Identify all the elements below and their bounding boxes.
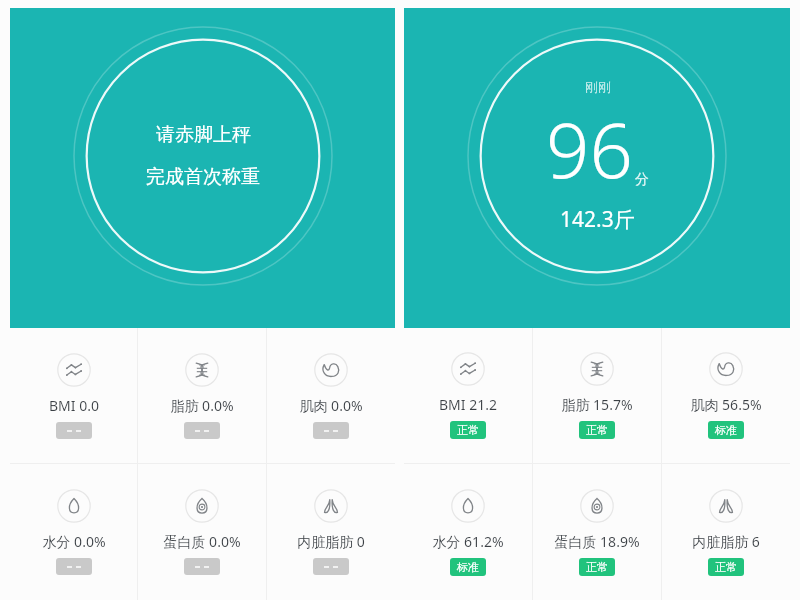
staticText: 内脏脂肪 6 xyxy=(692,532,760,551)
button[interactable]: 蛋白质 18.9% xyxy=(533,464,661,600)
staticText: 水分 0.0% xyxy=(42,532,106,551)
button[interactable]: 内脏脂肪 0 xyxy=(267,464,395,600)
button[interactable]: 脂肪 0.0% xyxy=(138,328,266,463)
staticText: BMI 21.2 xyxy=(439,395,497,414)
staticText: 水分 61.2% xyxy=(432,532,504,551)
button[interactable]: 肌肉 56.5% xyxy=(662,328,790,463)
staticText: 肌肉 0.0% xyxy=(299,396,363,415)
staticText: 分 xyxy=(635,171,649,189)
staticText: 142.3斤 xyxy=(560,205,635,234)
other: 脂肪 15.7% xyxy=(580,352,614,386)
button[interactable]: 请赤脚上秤 xyxy=(10,8,395,328)
other: 蛋白质 0.0% xyxy=(185,489,219,523)
button[interactable]: 刚刚 xyxy=(404,8,790,328)
button[interactable]: BMI 0.0 xyxy=(10,328,137,463)
staticText: 蛋白质 0.0% xyxy=(163,532,241,551)
staticText: BMI 0.0 xyxy=(49,396,99,415)
staticText: 蛋白质 18.9% xyxy=(554,532,640,551)
staticText: 标准 xyxy=(457,560,479,574)
button[interactable]: 水分 0.0% xyxy=(10,464,137,600)
button[interactable]: 脂肪 15.7% xyxy=(533,328,661,463)
button[interactable]: 内脏脂肪 6 xyxy=(662,464,790,600)
button[interactable]: 水分 61.2% xyxy=(404,464,532,600)
staticText: 正常 xyxy=(457,423,479,437)
staticText: 标准 xyxy=(715,423,737,437)
staticText: 内脏脂肪 0 xyxy=(297,532,365,551)
staticText: 脂肪 0.0% xyxy=(170,396,234,415)
staticText: 正常 xyxy=(586,560,608,574)
staticText: 正常 xyxy=(586,423,608,437)
button[interactable]: 蛋白质 0.0% xyxy=(138,464,266,600)
staticText: 刚刚 xyxy=(585,79,611,95)
staticText: 请赤脚上秤 xyxy=(156,123,251,147)
other: 内脏脂肪 0 xyxy=(314,489,348,523)
other: BMI 0.0 xyxy=(57,353,91,387)
other: 肌肉 56.5% xyxy=(709,352,743,386)
staticText: 96 xyxy=(546,97,633,201)
button[interactable]: 肌肉 0.0% xyxy=(267,328,395,463)
button[interactable]: BMI 21.2 xyxy=(404,328,532,463)
other: 水分 0.0% xyxy=(57,489,91,523)
staticText: 脂肪 15.7% xyxy=(561,395,633,414)
other: 水分 61.2% xyxy=(451,489,485,523)
staticText: 肌肉 56.5% xyxy=(690,395,762,414)
other: 脂肪 0.0% xyxy=(185,353,219,387)
other: 肌肉 0.0% xyxy=(314,353,348,387)
other: 蛋白质 18.9% xyxy=(580,489,614,523)
other: 内脏脂肪 6 xyxy=(709,489,743,523)
other: BMI 21.2 xyxy=(451,352,485,386)
staticText: 正常 xyxy=(715,560,737,574)
staticText: 完成首次称重 xyxy=(146,165,260,189)
